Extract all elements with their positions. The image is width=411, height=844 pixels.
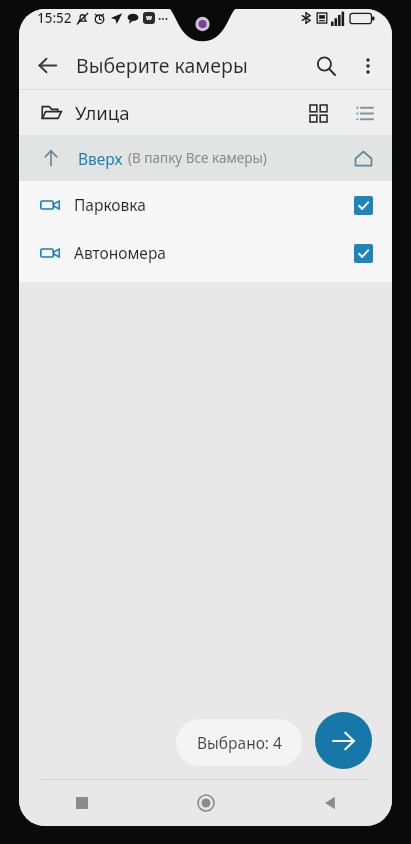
button[interactable]: Поиск: [304, 44, 348, 88]
staticText: 15:52: [37, 9, 72, 27]
button[interactable]: Выбрано: [342, 232, 384, 274]
staticText: Автономера: [74, 242, 166, 263]
button[interactable]: Парковка: [19, 181, 392, 228]
button[interactable]: Выбрано: 4: [176, 719, 302, 766]
button[interactable]: Улица: [19, 90, 392, 135]
staticText: Выберите камеры: [76, 52, 248, 79]
button[interactable]: Последние приложения: [19, 780, 144, 826]
staticText: Парковка: [74, 194, 146, 215]
staticText: (В папку Все камеры): [128, 149, 267, 167]
staticText: Улица: [75, 100, 130, 125]
button[interactable]: Назад: [268, 780, 392, 826]
staticText: Вверх: [78, 148, 123, 169]
button[interactable]: Домой: [144, 780, 268, 826]
button[interactable]: Назад: [29, 42, 66, 89]
button[interactable]: Далее: [315, 712, 372, 769]
staticText: w: [146, 13, 152, 23]
button[interactable]: Список: [344, 93, 384, 133]
button[interactable]: Вверх: [19, 135, 392, 181]
button[interactable]: Выбрано: [342, 184, 384, 226]
staticText: ···: [158, 10, 169, 26]
button[interactable]: Сетка: [298, 93, 338, 133]
staticText: Выбрано: 4: [197, 732, 282, 753]
button[interactable]: Автономера: [19, 229, 392, 276]
button[interactable]: Ещё: [348, 46, 388, 86]
button[interactable]: Домой: [342, 137, 384, 179]
